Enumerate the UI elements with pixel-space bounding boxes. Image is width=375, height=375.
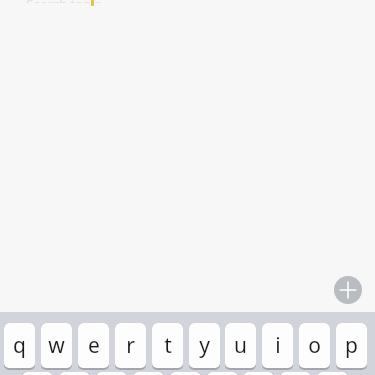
staticText: u — [234, 331, 247, 360]
staticText: q — [13, 331, 26, 360]
staticText: o — [308, 331, 321, 360]
button[interactable]: i — [262, 323, 293, 370]
button[interactable]: u — [225, 323, 256, 370]
button[interactable]: q — [4, 323, 35, 370]
button[interactable]: f — [133, 372, 164, 375]
button[interactable]: k — [280, 372, 311, 375]
button[interactable]: s — [59, 372, 90, 375]
staticText: i — [275, 331, 281, 360]
button[interactable]: p — [336, 323, 367, 370]
button[interactable]: d — [96, 372, 127, 375]
button[interactable]: h — [207, 372, 238, 375]
button[interactable]: e — [78, 323, 109, 370]
staticText: p — [345, 331, 358, 360]
staticText: y — [199, 331, 210, 360]
button[interactable]: t — [152, 323, 183, 370]
button[interactable]: g — [170, 372, 201, 375]
button[interactable]: w — [41, 323, 72, 370]
button[interactable]: y — [189, 323, 220, 370]
staticText: r — [126, 331, 135, 360]
staticText: Search topic — [26, 0, 101, 3]
button[interactable]: l — [317, 372, 348, 375]
button[interactable]: Search topic — [0, 0, 375, 8]
button[interactable]: o — [299, 323, 330, 370]
staticText: w — [48, 331, 65, 360]
button[interactable]: Add — [334, 276, 362, 304]
button[interactable]: r — [115, 323, 146, 370]
staticText: t — [164, 331, 172, 360]
button[interactable]: a — [22, 372, 53, 375]
button[interactable]: j — [243, 372, 274, 375]
staticText: e — [88, 331, 100, 360]
